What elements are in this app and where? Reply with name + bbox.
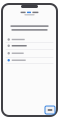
button[interactable]	[3, 57, 56, 63]
button[interactable]	[3, 49, 56, 57]
button[interactable]	[3, 37, 56, 42]
button[interactable]: Compose	[45, 106, 55, 114]
button[interactable]	[3, 42, 56, 49]
